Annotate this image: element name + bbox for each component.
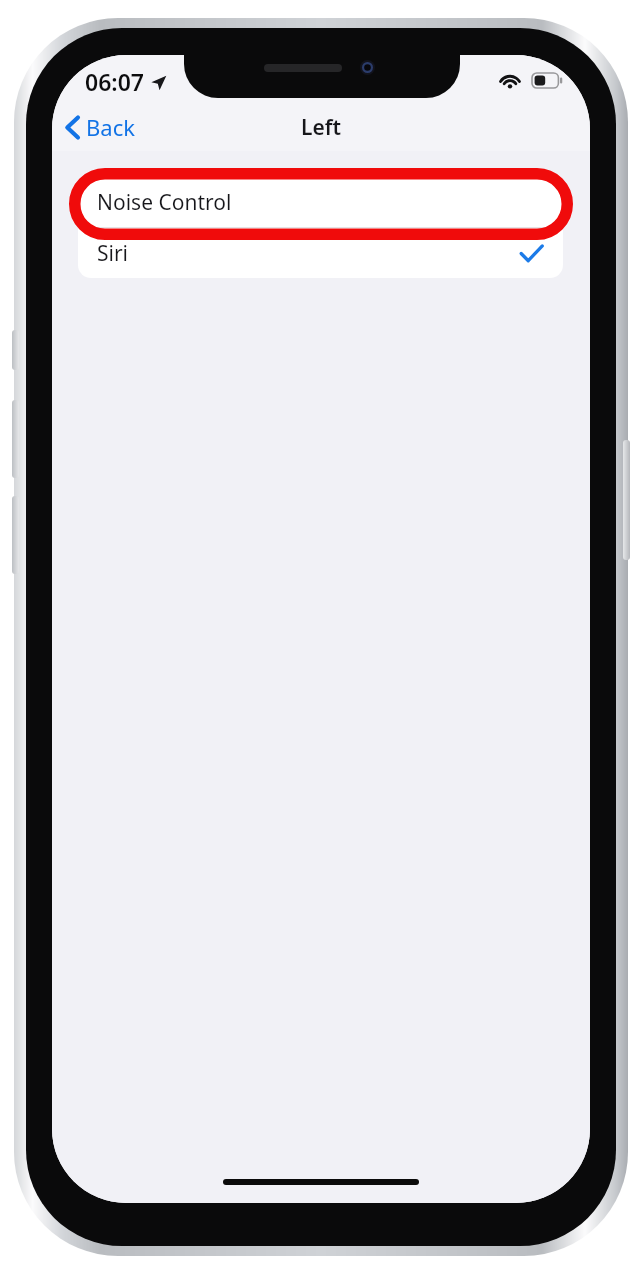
staticText: Left [301, 113, 342, 142]
staticText: Back [86, 112, 135, 142]
button[interactable]: Back [52, 106, 147, 148]
button[interactable]: Siri [78, 228, 563, 278]
staticText: 06:07 [85, 66, 144, 97]
staticText: Noise Control [97, 188, 232, 217]
staticText: Siri [97, 239, 129, 268]
button[interactable]: Noise Control [78, 177, 563, 227]
